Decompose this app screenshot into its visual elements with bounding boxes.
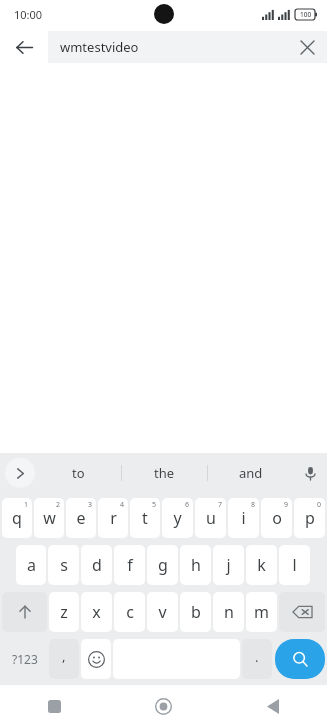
button[interactable]: t — [130, 498, 160, 538]
staticText: e — [76, 507, 86, 529]
staticText: g — [158, 554, 168, 576]
button[interactable]: More suggestions — [5, 458, 35, 488]
staticText: t — [142, 507, 148, 529]
button[interactable]: h — [180, 545, 211, 585]
button[interactable]: y — [162, 498, 193, 538]
button[interactable]: the — [122, 453, 207, 493]
button[interactable]: Voice input — [293, 453, 327, 493]
button[interactable]: a — [16, 545, 46, 585]
staticText: 8 — [251, 500, 256, 510]
button[interactable]: wmtestvideo — [48, 31, 327, 63]
button[interactable]: x — [81, 592, 112, 632]
staticText: u — [206, 507, 216, 529]
staticText: 0 — [317, 500, 322, 510]
staticText: d — [92, 554, 102, 576]
staticText: 100 — [300, 10, 312, 19]
button[interactable]: m — [246, 592, 277, 632]
staticText: 5 — [152, 500, 157, 510]
staticText: m — [254, 601, 269, 623]
staticText: f — [127, 554, 133, 576]
staticText: z — [60, 601, 68, 623]
staticText: 9 — [284, 500, 289, 510]
button[interactable]: w — [34, 498, 64, 538]
staticText: ?123 — [12, 651, 38, 667]
staticText: p — [305, 507, 315, 529]
staticText: k — [257, 554, 266, 576]
button[interactable]: q — [2, 498, 32, 538]
button[interactable]: . — [242, 639, 272, 679]
button[interactable]: d — [81, 545, 112, 585]
button[interactable]: Back — [0, 28, 48, 66]
button[interactable]: i — [228, 498, 259, 538]
button[interactable]: s — [48, 545, 79, 585]
button[interactable]: j — [213, 545, 244, 585]
button[interactable]: Clear — [287, 31, 327, 63]
staticText: b — [191, 601, 201, 623]
button[interactable]: , — [49, 639, 79, 679]
button[interactable]: f — [114, 545, 145, 585]
button[interactable]: o — [261, 498, 292, 538]
staticText: q — [12, 507, 22, 529]
staticText: a — [27, 554, 36, 576]
button[interactable]: l — [279, 545, 310, 585]
staticText: w — [43, 507, 56, 529]
staticText: wmtestvideo — [60, 38, 287, 56]
button[interactable]: Recents — [0, 685, 109, 728]
staticText: v — [158, 601, 167, 623]
button[interactable]: p — [294, 498, 325, 538]
staticText: . — [255, 648, 259, 666]
staticText: x — [92, 601, 101, 623]
button[interactable]: Backspace — [279, 592, 325, 632]
button[interactable]: v — [147, 592, 178, 632]
staticText: 4 — [120, 500, 125, 510]
staticText: s — [60, 554, 68, 576]
button[interactable]: to — [35, 453, 121, 493]
staticText: h — [191, 554, 201, 576]
button[interactable]: e — [66, 498, 96, 538]
button[interactable]: r — [98, 498, 128, 538]
staticText: 3 — [88, 500, 93, 510]
button[interactable]: g — [147, 545, 178, 585]
button[interactable]: Search — [275, 639, 325, 679]
staticText: n — [224, 601, 234, 623]
button[interactable]: c — [114, 592, 145, 632]
staticText: the — [154, 464, 175, 482]
button[interactable]: Home — [109, 685, 218, 728]
button[interactable]: z — [49, 592, 79, 632]
staticText: 2 — [56, 500, 61, 510]
staticText: r — [110, 507, 117, 529]
button[interactable]: Shift — [2, 592, 47, 632]
staticText: to — [72, 464, 85, 482]
button[interactable]: b — [180, 592, 211, 632]
staticText: j — [226, 554, 231, 576]
staticText: 7 — [218, 500, 223, 510]
staticText: 10:00 — [14, 7, 43, 22]
staticText: 1 — [24, 500, 29, 510]
staticText: l — [292, 554, 297, 576]
staticText: 6 — [185, 500, 190, 510]
button[interactable]: k — [246, 545, 277, 585]
button[interactable]: and — [208, 453, 293, 493]
staticText: o — [272, 507, 282, 529]
staticText: , — [62, 647, 66, 665]
button[interactable]: Emoji — [81, 639, 111, 679]
staticText: and — [239, 464, 263, 482]
button[interactable]: u — [195, 498, 226, 538]
button[interactable]: ?123 — [2, 639, 47, 679]
button[interactable]: Back — [218, 685, 327, 728]
button[interactable]: n — [213, 592, 244, 632]
staticText: c — [126, 601, 134, 623]
staticText: y — [173, 507, 182, 529]
staticText: i — [241, 507, 246, 529]
